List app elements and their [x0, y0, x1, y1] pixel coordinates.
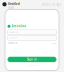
staticText: Draft [8, 6, 14, 9]
staticText: Greenline [11, 24, 26, 28]
button[interactable]: Sign in [7, 57, 56, 62]
staticText: Forgot? [50, 42, 56, 44]
staticText: Remember me [7, 42, 17, 44]
staticText: Edited 2h ago [42, 3, 62, 6]
staticText: Untitled [8, 2, 20, 6]
staticText: Email address [9, 31, 19, 33]
staticText: Sign in [27, 58, 37, 61]
button[interactable]: Forgot? [50, 42, 56, 44]
staticText: Create account [26, 64, 37, 66]
button[interactable]: Create account [26, 64, 37, 66]
button[interactable]: Remember me [7, 42, 17, 44]
